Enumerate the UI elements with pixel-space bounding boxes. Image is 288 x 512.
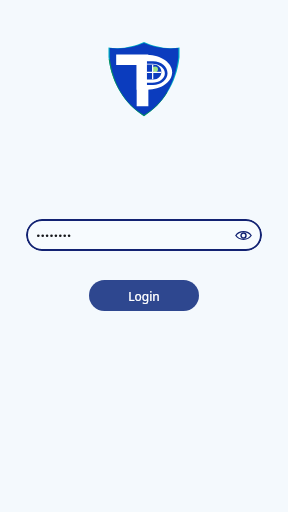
button[interactable]: Show password — [233, 225, 253, 245]
button[interactable]: Login — [89, 280, 199, 311]
staticText: Login — [128, 288, 160, 304]
button[interactable]: Show password — [26, 219, 262, 251]
